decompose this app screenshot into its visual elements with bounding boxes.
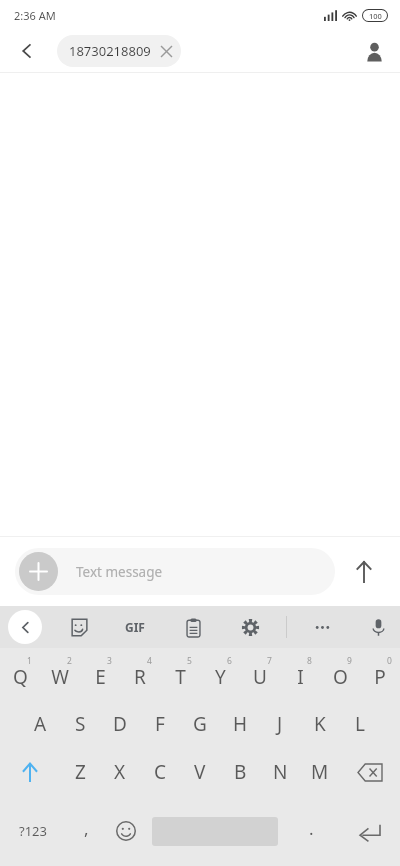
staticText: GIF [125,619,145,635]
button[interactable]: H [220,700,260,748]
button[interactable]: More options [305,610,339,644]
button[interactable]: F [140,700,180,748]
staticText: 5 [187,655,192,667]
staticText: X [114,759,126,785]
staticText: 9 [347,655,352,667]
button[interactable]: Enter [338,796,400,866]
button[interactable]: V [180,748,220,796]
staticText: P [374,664,386,690]
button[interactable]: . [284,796,338,866]
staticText: J [277,711,283,737]
staticText: Text message [76,563,163,581]
button[interactable]: M [300,748,340,796]
button[interactable]: I [280,648,320,700]
button[interactable]: K [300,700,340,748]
button[interactable]: Back [8,32,46,70]
button[interactable]: Stickers [61,610,95,644]
button[interactable]: Voice input [361,610,395,644]
button[interactable]: Z [60,748,100,796]
staticText: Y [215,664,226,690]
button[interactable]: Settings [233,610,267,644]
button[interactable]: L [340,700,380,748]
staticText: I [297,664,304,690]
staticText: O [333,664,348,690]
button[interactable]: Shift [0,748,60,796]
button[interactable]: Emoji [106,796,146,866]
button[interactable]: Send [342,550,386,594]
button[interactable]: B [220,748,260,796]
staticText: , [84,817,89,840]
staticText: M [311,759,329,785]
staticText: 8 [307,655,312,667]
button[interactable]: Collapse toolbar [8,610,42,644]
button[interactable]: E [80,648,120,700]
button[interactable]: Add attachment [19,552,58,591]
button[interactable]: R [120,648,160,700]
button[interactable]: Add attachment [15,548,335,595]
staticText: Q [13,664,28,690]
staticText: N [273,759,288,785]
staticText: . [309,817,314,840]
button[interactable]: C [140,748,180,796]
staticText: 0 [387,655,392,667]
staticText: V [194,759,206,785]
staticText: B [234,759,247,785]
staticText: T [175,664,186,690]
button[interactable]: A [20,700,60,748]
staticText: L [355,711,365,737]
staticText: 18730218809 [69,42,151,60]
button[interactable]: Clipboard [176,610,210,644]
button[interactable]: J [260,700,300,748]
staticText: 1 [27,655,32,667]
staticText: H [233,711,248,737]
staticText: 2:36 AM [14,8,56,23]
button[interactable]: GIF [117,609,153,645]
button[interactable]: T [160,648,200,700]
button[interactable]: P [360,648,400,700]
button[interactable]: Y [200,648,240,700]
staticText: 2 [67,655,72,667]
staticText: 3 [107,655,112,667]
staticText: Z [75,759,86,785]
staticText: 4 [147,655,152,667]
staticText: K [314,711,326,737]
button[interactable]: Contact [354,31,394,71]
button[interactable]: D [100,700,140,748]
button[interactable]: X [100,748,140,796]
staticText: R [134,664,146,690]
staticText: 6 [227,655,232,667]
button[interactable]: Backspace [340,748,400,796]
staticText: 100 [369,11,382,21]
staticText: G [193,711,207,737]
button[interactable]: O [320,648,360,700]
button[interactable]: , [66,796,106,866]
staticText: 7 [267,655,272,667]
button[interactable]: N [260,748,300,796]
staticText: D [113,711,127,737]
other: Remove [161,46,172,57]
button[interactable]: W [40,648,80,700]
staticText: ?123 [19,822,47,840]
staticText: S [75,711,86,737]
button[interactable]: Q [0,648,40,700]
staticText: W [51,664,69,690]
button[interactable]: ?123 [0,796,66,866]
button[interactable]: S [60,700,100,748]
staticText: A [34,711,47,737]
button[interactable]: 18730218809 [57,35,181,67]
staticText: U [253,664,267,690]
staticText: E [95,664,106,690]
staticText: F [155,711,165,737]
button[interactable]: U [240,648,280,700]
staticText: C [154,759,167,785]
button[interactable]: G [180,700,220,748]
